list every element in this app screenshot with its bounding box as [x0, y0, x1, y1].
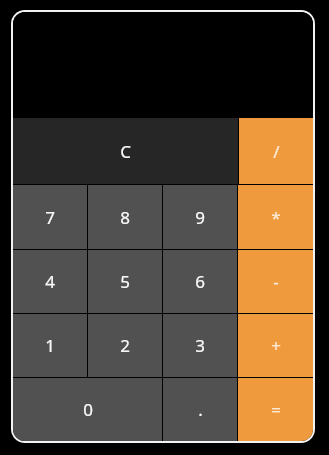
- button[interactable]: 1: [13, 314, 87, 377]
- staticText: 1: [45, 334, 55, 357]
- staticText: *: [271, 206, 281, 229]
- button[interactable]: +: [238, 314, 313, 377]
- staticText: 9: [195, 206, 205, 229]
- staticText: 3: [195, 334, 205, 357]
- button[interactable]: -: [238, 250, 313, 313]
- button[interactable]: 2: [88, 314, 162, 377]
- button[interactable]: 3: [163, 314, 237, 377]
- staticText: 7: [45, 206, 55, 229]
- button[interactable]: C: [13, 118, 238, 184]
- button[interactable]: 6: [163, 250, 237, 313]
- button[interactable]: 9: [163, 185, 237, 249]
- staticText: -: [273, 270, 279, 293]
- staticText: 8: [120, 206, 130, 229]
- staticText: C: [120, 140, 131, 163]
- staticText: 2: [120, 334, 130, 357]
- button[interactable]: 7: [13, 185, 87, 249]
- staticText: .: [198, 398, 203, 421]
- staticText: =: [271, 398, 281, 421]
- staticText: 0: [83, 398, 93, 421]
- button[interactable]: 0: [13, 378, 162, 441]
- button[interactable]: *: [238, 185, 313, 249]
- button[interactable]: Display: [13, 12, 313, 118]
- staticText: 6: [195, 270, 205, 293]
- staticText: +: [271, 334, 281, 357]
- button[interactable]: 4: [13, 250, 87, 313]
- button[interactable]: 8: [88, 185, 162, 249]
- staticText: 5: [120, 270, 130, 293]
- staticText: /: [273, 140, 280, 163]
- button[interactable]: 5: [88, 250, 162, 313]
- button[interactable]: /: [239, 118, 313, 184]
- button[interactable]: .: [163, 378, 237, 441]
- staticText: 4: [45, 270, 55, 293]
- button[interactable]: =: [238, 378, 313, 441]
